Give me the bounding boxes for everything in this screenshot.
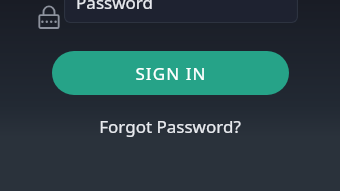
button[interactable]: Password [64, 0, 298, 23]
button[interactable]: SIGN IN [52, 51, 289, 95]
staticText: SIGN IN [135, 62, 207, 85]
button[interactable]: Forgot Password? [0, 113, 340, 139]
staticText: Forgot Password? [99, 115, 241, 138]
staticText: Password [76, 0, 153, 14]
other: Password [38, 5, 60, 29]
